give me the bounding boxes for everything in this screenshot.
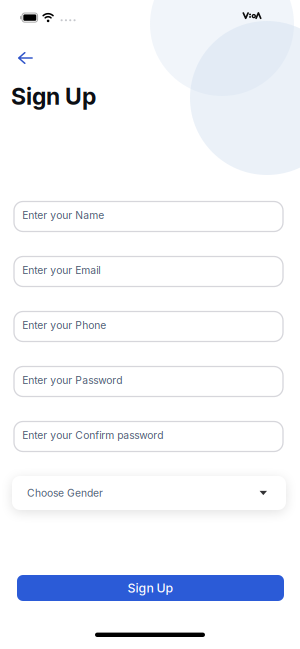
button[interactable]: Choose Gender — [12, 476, 286, 510]
staticText: Sign Up — [127, 581, 173, 595]
staticText: Enter your Email — [22, 264, 100, 277]
staticText: Enter your Password — [22, 374, 122, 387]
button[interactable]: Enter your Name — [14, 201, 283, 231]
staticText: Sign Up — [11, 82, 96, 110]
button[interactable]: Enter your Password — [14, 366, 283, 396]
button[interactable]: Enter your Phone — [14, 311, 283, 341]
staticText: Choose Gender — [27, 487, 103, 499]
staticText: Enter your Name — [22, 209, 104, 222]
button[interactable]: Enter your Confirm password — [14, 421, 283, 451]
button[interactable]: Sign Up — [17, 575, 284, 601]
button[interactable]: Enter your Email — [14, 256, 283, 286]
staticText: Enter your Phone — [22, 319, 106, 332]
button[interactable]: Back — [12, 46, 39, 70]
staticText: Enter your Confirm password — [22, 429, 163, 442]
